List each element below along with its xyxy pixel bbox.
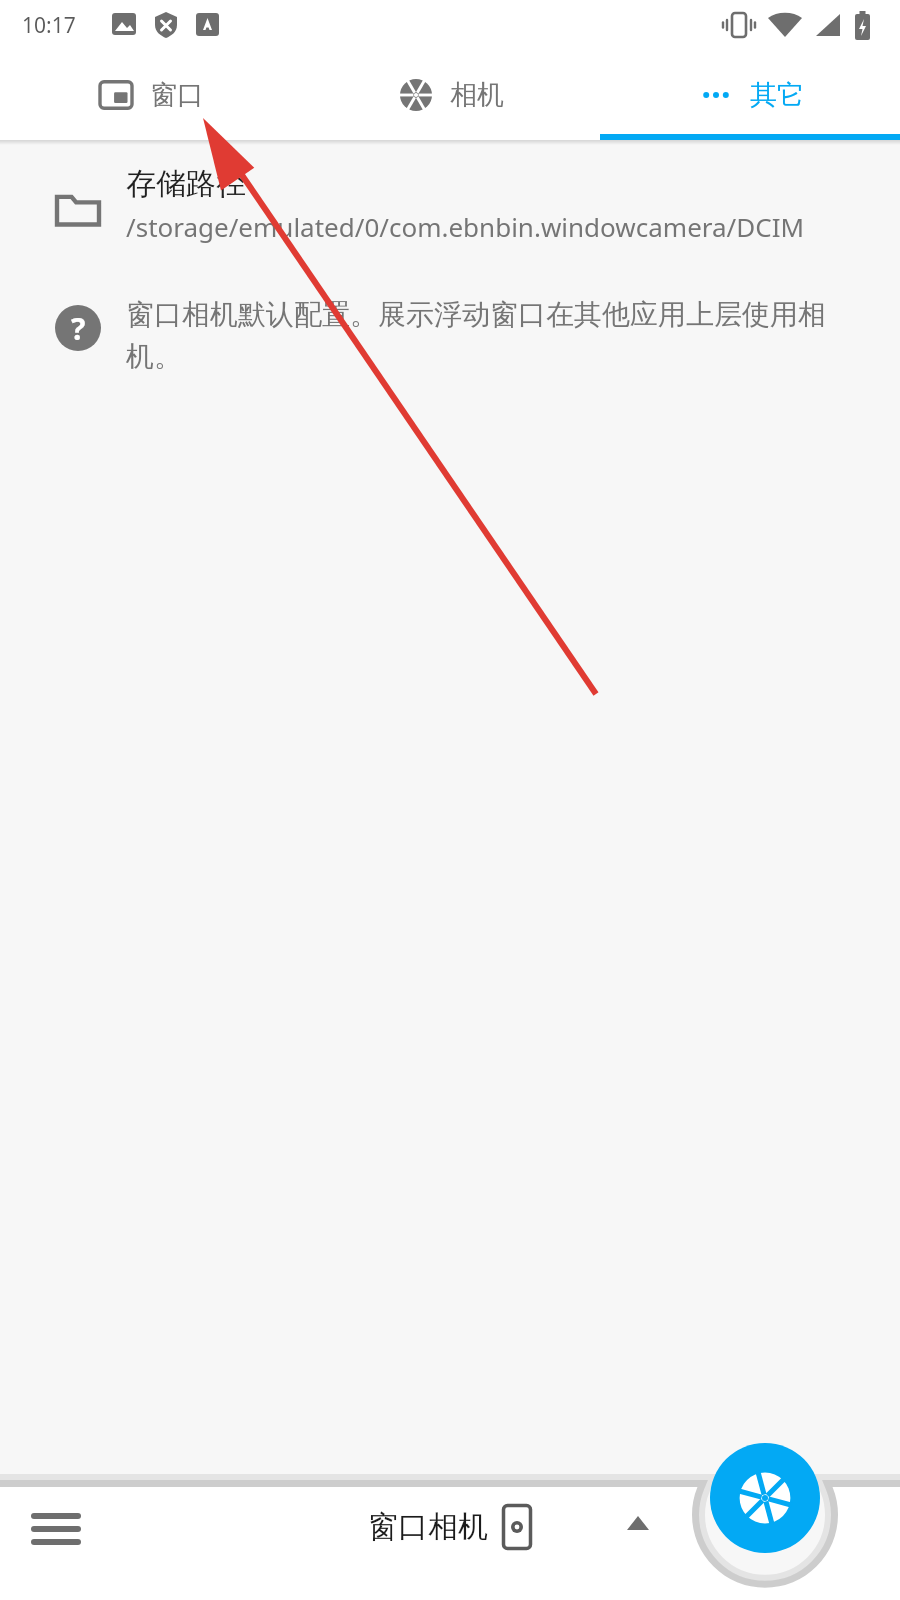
staticText: 存储路径 — [126, 165, 246, 203]
button[interactable]: Capture — [710, 1443, 820, 1553]
button[interactable]: Menu — [18, 1491, 94, 1567]
staticText: 窗口相机 — [368, 1508, 488, 1546]
button[interactable]: 其它 — [600, 50, 900, 140]
staticText: /storage/emulated/0/com.ebnbin.windowcam… — [126, 209, 805, 244]
button[interactable]: 窗口 — [0, 50, 300, 140]
staticText: ? — [71, 308, 86, 349]
staticText: 相机 — [450, 78, 504, 112]
button[interactable]: 存储路径 — [0, 159, 900, 255]
button[interactable]: 相机 — [300, 50, 600, 140]
button[interactable]: ? — [0, 277, 900, 381]
button[interactable]: 窗口相机 — [368, 1504, 532, 1550]
staticText: 其它 — [750, 78, 804, 112]
button[interactable]: Expand — [610, 1495, 666, 1551]
staticText: 窗口相机默认配置。展示浮动窗口在其他应用上层使用相机。 — [126, 297, 840, 375]
staticText: 窗口 — [150, 78, 204, 112]
staticText: 10:17 — [22, 11, 76, 40]
